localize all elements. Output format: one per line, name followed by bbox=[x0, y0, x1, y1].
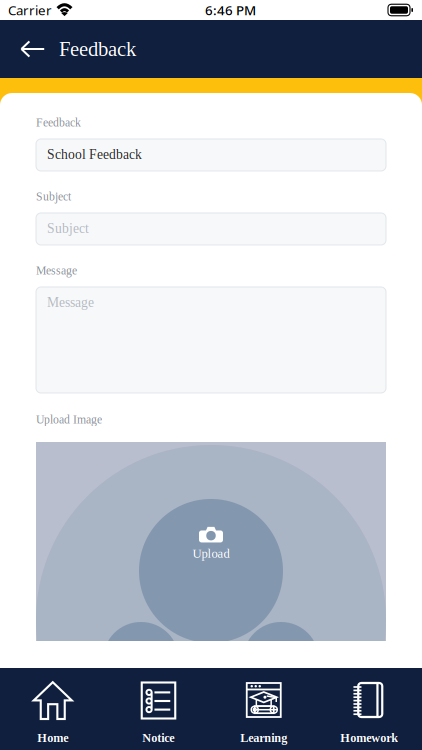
staticText: Upload Image bbox=[36, 413, 102, 426]
staticText: Subject bbox=[36, 190, 71, 203]
button[interactable]: Upload Image bbox=[36, 442, 386, 641]
button[interactable]: Home bbox=[0, 668, 105, 750]
staticText: School Feedback bbox=[47, 147, 142, 162]
staticText: Feedback bbox=[59, 38, 136, 60]
staticText: Subject bbox=[47, 221, 89, 236]
staticText: Message bbox=[47, 295, 94, 310]
staticText: Homework bbox=[340, 731, 398, 745]
button[interactable]: Learning bbox=[211, 668, 316, 750]
button[interactable]: Notice bbox=[105, 668, 211, 750]
staticText: Home bbox=[37, 731, 68, 745]
staticText: Learning bbox=[240, 731, 287, 745]
staticText: Upload bbox=[192, 546, 229, 560]
staticText: Carrier bbox=[8, 1, 52, 19]
staticText: Message bbox=[36, 264, 77, 277]
button[interactable]: Homework bbox=[316, 668, 422, 750]
staticText: 6:46 PM bbox=[205, 1, 256, 19]
staticText: Notice bbox=[142, 731, 174, 745]
staticText: Feedback bbox=[36, 116, 81, 129]
button[interactable]: Back bbox=[0, 20, 59, 78]
